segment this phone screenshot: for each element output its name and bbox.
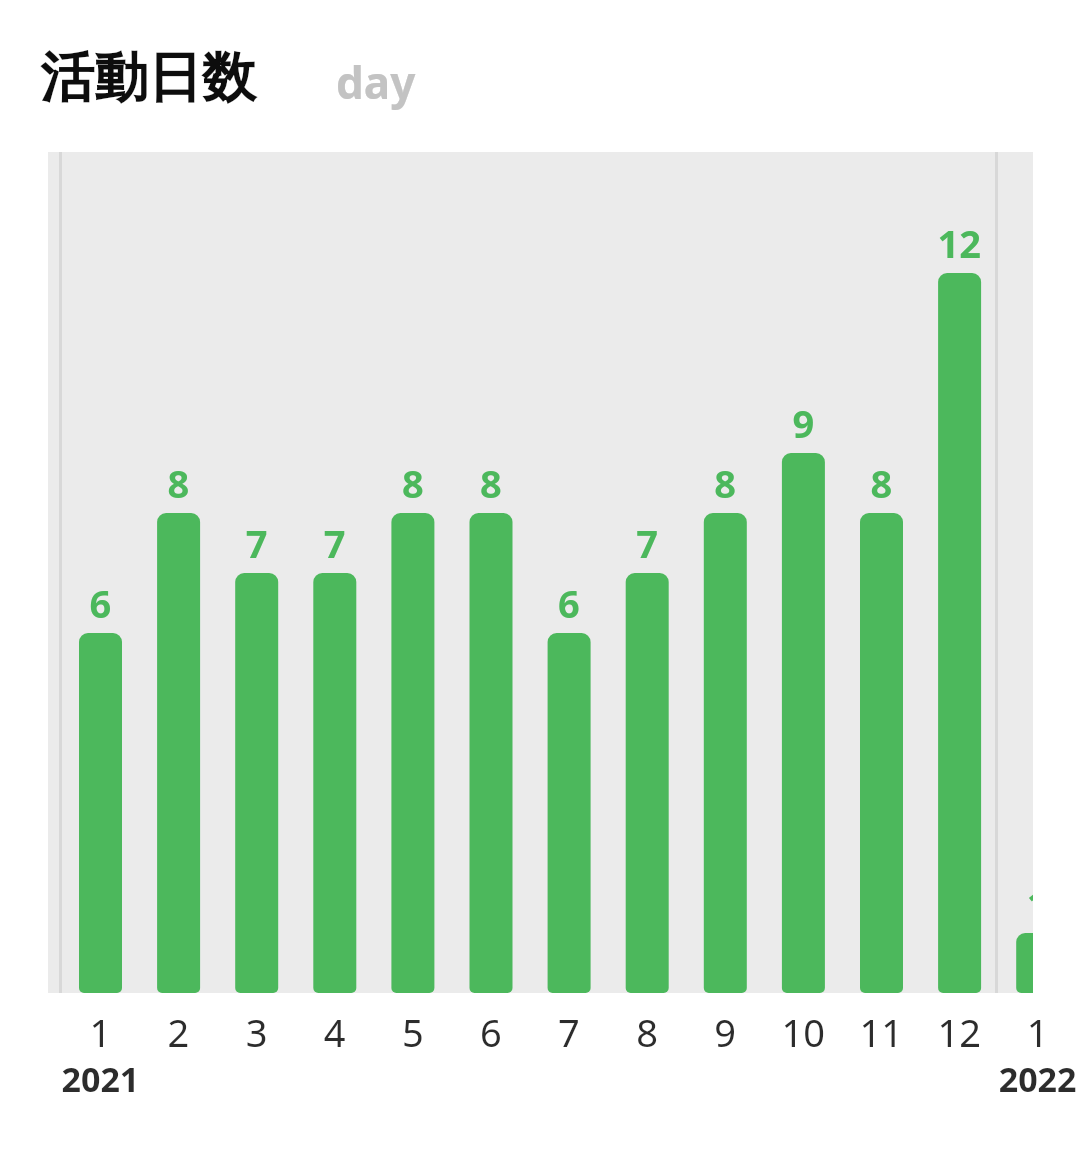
button[interactable]: 活動日数 day bar chart (0, 0, 1080, 1151)
